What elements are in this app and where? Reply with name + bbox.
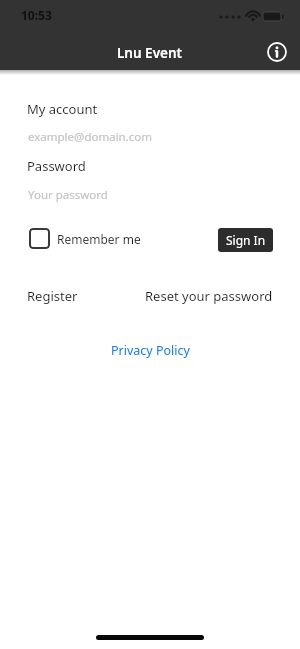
staticText: Password bbox=[27, 157, 86, 175]
button[interactable]: Your password bbox=[28, 187, 108, 203]
staticText: Remember me bbox=[57, 231, 141, 247]
staticText: My account bbox=[27, 100, 98, 118]
button[interactable]: Privacy Policy bbox=[111, 342, 190, 359]
staticText: 10:53 bbox=[21, 7, 52, 23]
button[interactable]: Sign In bbox=[218, 228, 273, 252]
button[interactable] bbox=[266, 41, 288, 63]
staticText: Your password bbox=[28, 187, 108, 203]
staticText: Privacy Policy bbox=[111, 342, 190, 359]
staticText: Reset your password bbox=[145, 287, 273, 305]
button[interactable]: Register bbox=[27, 287, 78, 305]
staticText: example@domain.com bbox=[28, 129, 153, 145]
staticText: Register bbox=[27, 287, 78, 305]
button[interactable]: example@domain.com bbox=[28, 129, 153, 145]
button[interactable] bbox=[29, 228, 50, 249]
button[interactable]: Reset your password bbox=[145, 287, 273, 305]
staticText: Sign In bbox=[226, 232, 266, 248]
staticText: Lnu Event bbox=[117, 44, 183, 62]
